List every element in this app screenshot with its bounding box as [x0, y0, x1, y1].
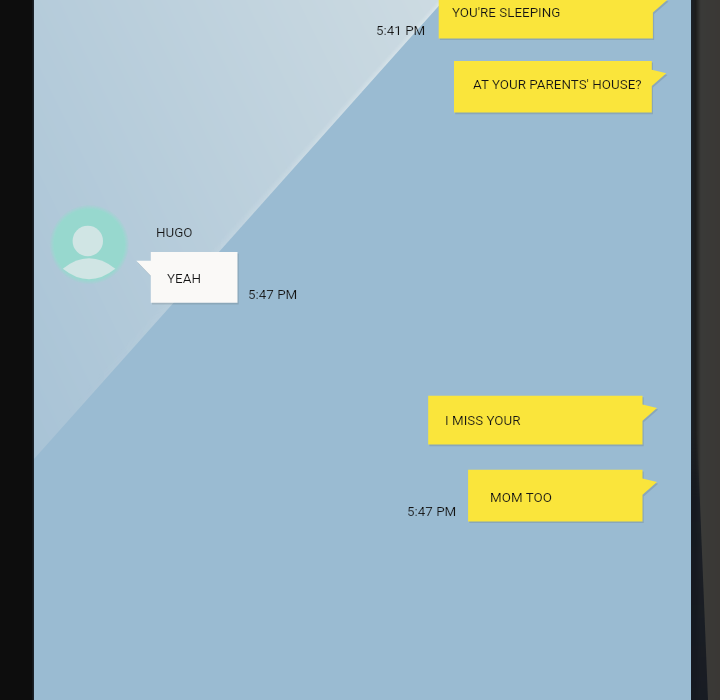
button[interactable]	[439, 0, 668, 39]
staticText: 5:41 PM	[376, 23, 426, 39]
staticText: I MISS YOUR	[445, 413, 521, 429]
staticText: 5:47 PM	[407, 504, 457, 520]
other: Chat conversation with Hugo	[0, 0, 720, 700]
button[interactable]	[428, 396, 657, 445]
staticText: HUGO	[156, 225, 193, 241]
staticText: 5:47 PM	[248, 287, 298, 303]
staticText: MOM TOO	[490, 490, 552, 506]
staticText: AT YOUR PARENTS' HOUSE?	[473, 77, 642, 93]
button[interactable]	[468, 470, 657, 522]
button[interactable]: Hugo profile picture	[49, 204, 129, 284]
button[interactable]	[454, 61, 666, 113]
staticText: YEAH	[167, 271, 201, 287]
staticText: YOU'RE SLEEPING	[452, 5, 561, 21]
button[interactable]	[136, 252, 237, 303]
